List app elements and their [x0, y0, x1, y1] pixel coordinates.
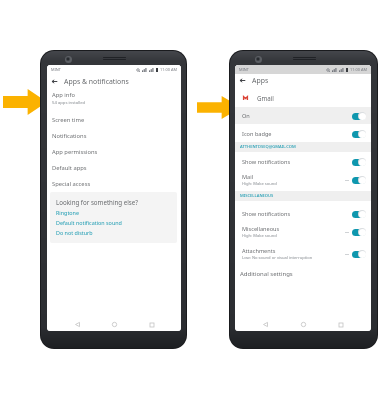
button[interactable]: Miscellaneous	[235, 223, 371, 241]
staticText: Looking for something else?	[56, 198, 139, 206]
staticText: Additional settings	[240, 270, 293, 278]
button[interactable]: Ringtone	[56, 209, 79, 216]
button[interactable]: Home	[295, 318, 311, 331]
button[interactable]: Show notifications	[235, 205, 371, 222]
button[interactable]: Back	[47, 73, 181, 89]
staticText: App permissions	[52, 148, 98, 156]
staticText: Attachments	[242, 247, 276, 255]
button[interactable]: Default notification sound	[56, 219, 122, 226]
other: Back	[239, 77, 246, 84]
button[interactable]: Mail	[235, 171, 371, 189]
staticText: Icon badge	[242, 130, 272, 138]
button[interactable]: Toggle	[352, 228, 366, 236]
staticText: Notifications	[52, 132, 87, 140]
staticText: MISCELLANEOUS	[240, 193, 274, 199]
button[interactable]: Back	[235, 73, 371, 87]
button[interactable]: Show notifications	[235, 153, 371, 170]
staticText: Miscellaneous	[242, 225, 280, 233]
staticText: Mail	[242, 173, 254, 181]
button[interactable]: Notifications	[47, 128, 181, 144]
staticText: Special access	[52, 180, 91, 188]
button[interactable]: Additional settings	[235, 267, 371, 281]
staticText: 11:00 AM	[160, 67, 177, 72]
staticText: High: Make sound	[242, 233, 277, 239]
staticText: High: Make sound	[242, 181, 277, 187]
button[interactable]: Attachments	[235, 245, 371, 263]
staticText: MINT	[51, 67, 61, 72]
staticText: Low: No sound or visual interruption	[242, 255, 313, 261]
staticText: Gmail	[257, 94, 274, 102]
button[interactable]: Icon badge	[235, 125, 371, 142]
button[interactable]: Gmail	[235, 91, 371, 105]
button[interactable]: Back	[69, 318, 85, 331]
button[interactable]: Toggle	[352, 130, 366, 138]
button[interactable]: Back	[257, 318, 273, 331]
staticText: Show notifications	[242, 210, 291, 218]
button[interactable]: Do not disturb	[56, 229, 93, 236]
staticText: App info	[52, 91, 75, 99]
staticText: Default apps	[52, 164, 87, 172]
staticText: 54 apps installed	[52, 100, 86, 106]
button[interactable]: Special access	[47, 176, 181, 192]
button[interactable]: Toggle	[352, 250, 366, 258]
staticText: Apps & notifications	[64, 77, 129, 86]
staticText: Screen time	[52, 116, 85, 124]
button[interactable]: Toggle	[352, 158, 366, 166]
staticText: On	[242, 112, 250, 120]
button[interactable]: Toggle	[352, 112, 366, 120]
staticText: 11:00 AM	[350, 67, 367, 72]
staticText: ATTHENTDSEQ@GMAIL.COM	[240, 144, 296, 150]
button[interactable]: Looking for something else?	[50, 192, 177, 243]
button[interactable]: Screen time	[47, 112, 181, 128]
button[interactable]: Toggle	[352, 210, 366, 218]
staticText: Show notifications	[242, 158, 291, 166]
button[interactable]: App info	[47, 90, 181, 106]
button[interactable]: Recent apps	[333, 318, 349, 331]
button[interactable]: Toggle	[352, 176, 366, 184]
other: Back	[51, 78, 58, 85]
button[interactable]: On	[235, 107, 371, 124]
button[interactable]: Home	[106, 318, 122, 331]
button[interactable]: Default apps	[47, 160, 181, 176]
button[interactable]: App permissions	[47, 144, 181, 160]
staticText: MINT	[239, 67, 249, 72]
staticText: Apps	[252, 76, 269, 85]
button[interactable]: Recent apps	[144, 318, 160, 331]
